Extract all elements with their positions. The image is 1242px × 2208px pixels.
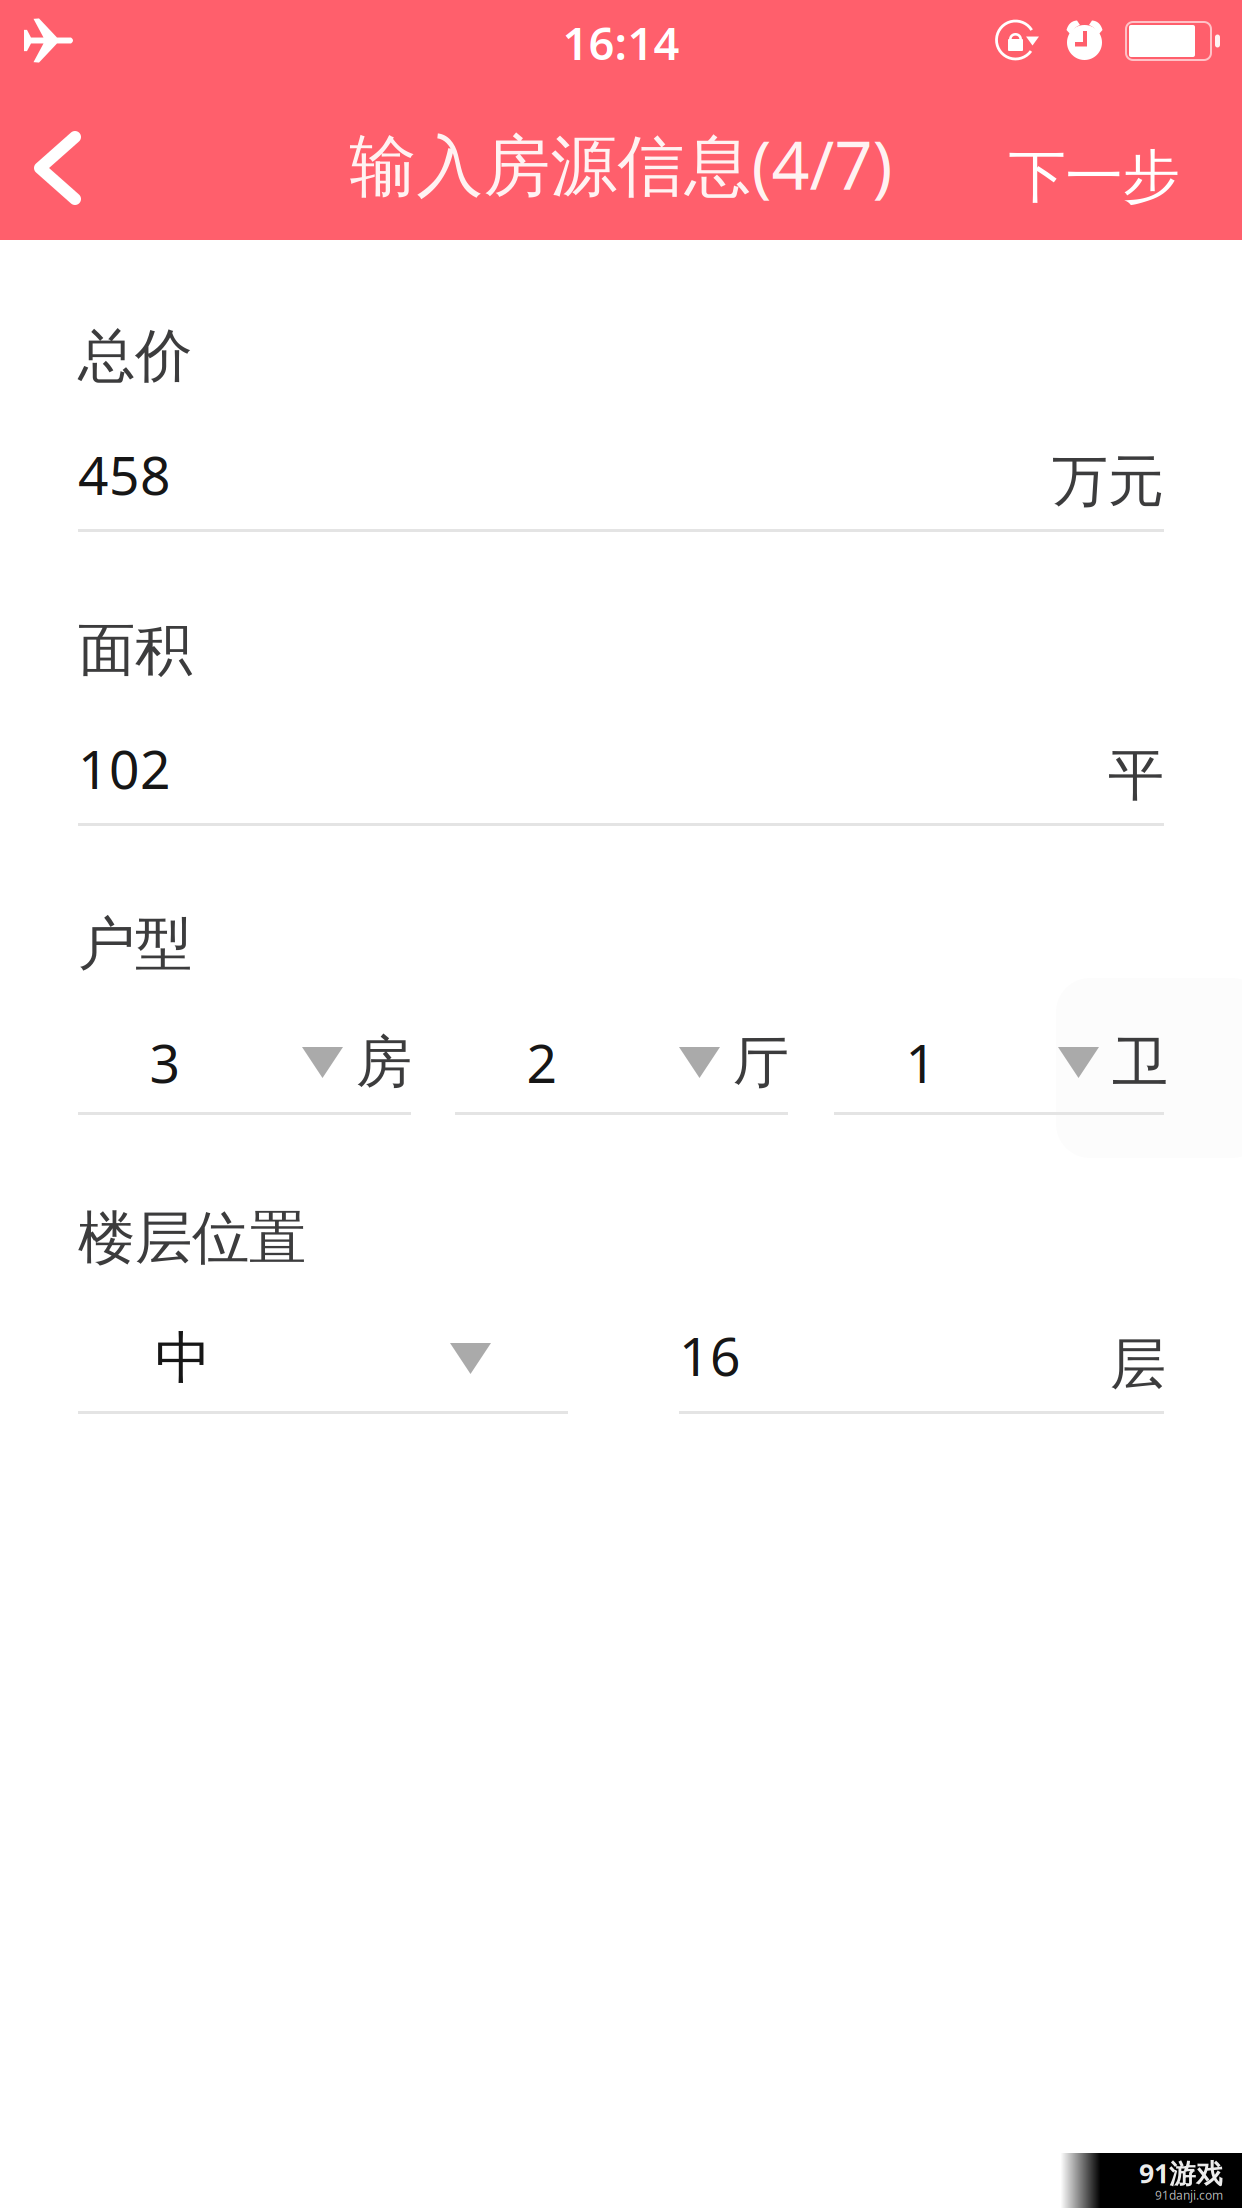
staticText: 总价	[78, 321, 192, 391]
staticText: 面积	[78, 615, 192, 685]
staticText: 万元	[1052, 447, 1164, 516]
staticText: 厅	[733, 1028, 789, 1097]
staticText: 户型	[78, 909, 192, 979]
staticText: 下一步	[1008, 142, 1179, 212]
staticText: 1	[905, 1027, 936, 1098]
button[interactable]: 16	[679, 1336, 1166, 1431]
staticText: 楼层位置	[78, 1203, 306, 1273]
button[interactable]: 面积	[78, 615, 1164, 830]
button[interactable]: 2	[455, 1044, 788, 1124]
staticText: 16:14	[562, 12, 679, 73]
button[interactable]: 下一步	[0, 0, 264, 152]
button[interactable]: 总价	[78, 321, 1164, 536]
staticText: 卫	[1112, 1028, 1168, 1097]
staticText: 房	[356, 1028, 412, 1097]
staticText: 层	[1110, 1330, 1166, 1399]
staticText: 3	[149, 1027, 180, 1098]
staticText: 91danji.com	[1155, 2187, 1223, 2203]
button[interactable]: 中	[78, 1336, 568, 1431]
staticText: 输入房源信息(4/7)	[349, 120, 892, 208]
staticText: 平	[1108, 741, 1164, 810]
staticText: 91游戏	[1139, 2155, 1223, 2191]
staticText: 16	[679, 1320, 741, 1391]
staticText: 458	[78, 439, 171, 510]
staticText: 2	[526, 1027, 557, 1098]
button[interactable]: Back	[0, 0, 130, 152]
staticText: 102	[78, 733, 171, 804]
button[interactable]: 1	[834, 1044, 1164, 1124]
staticText: 中	[155, 1324, 211, 1393]
button[interactable]: 3	[78, 1044, 411, 1124]
